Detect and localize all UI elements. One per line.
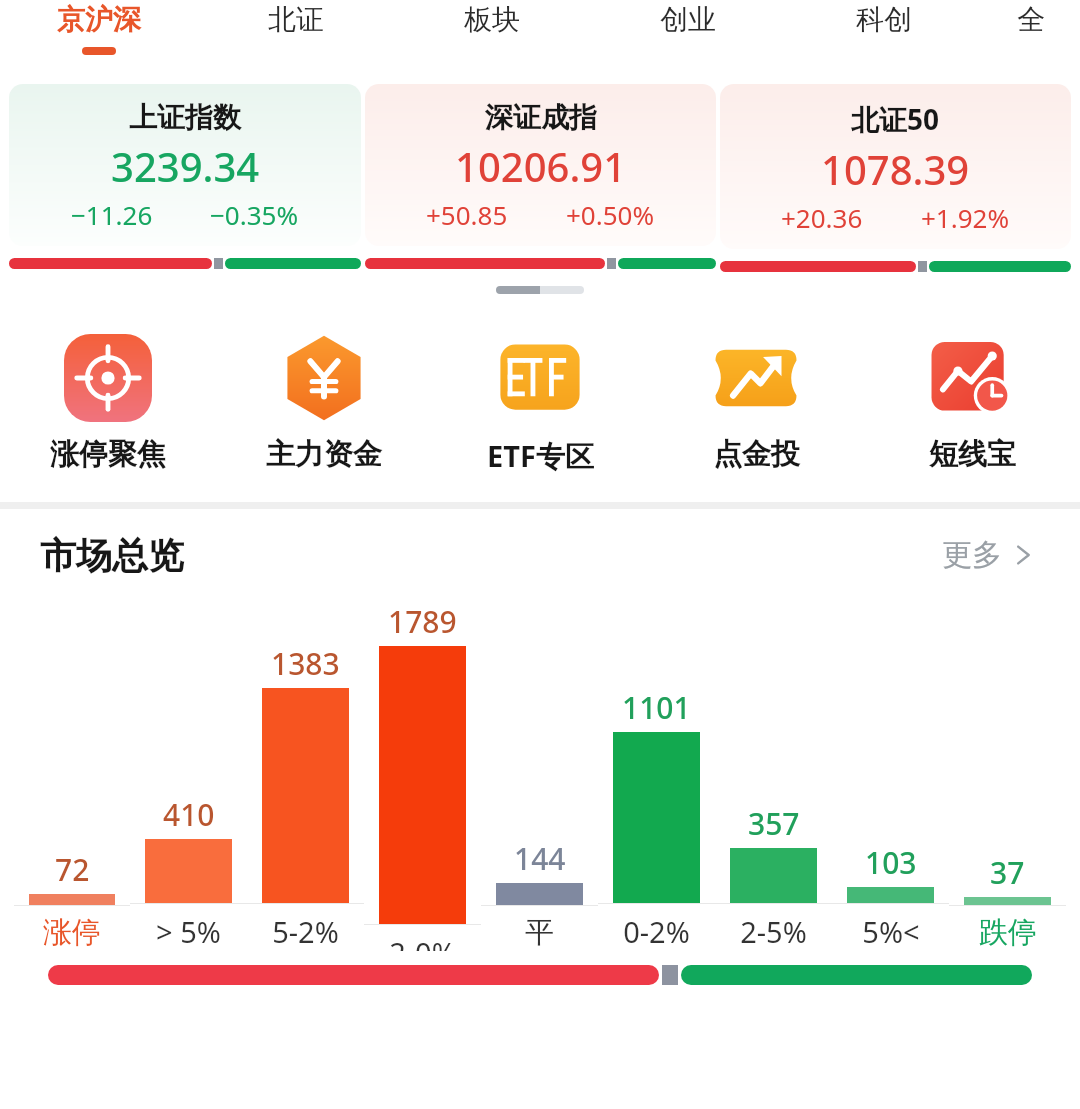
staticText: 5%< xyxy=(862,912,920,951)
staticText: 跌停 xyxy=(979,914,1037,951)
staticText: 市场总览 xyxy=(40,533,184,578)
staticText: 410 xyxy=(163,794,215,835)
staticText: 103 xyxy=(865,842,917,883)
button[interactable]: 北证50 xyxy=(720,84,1071,249)
staticText: 平 xyxy=(525,914,554,951)
button[interactable]: 全 xyxy=(982,0,1080,84)
staticText: 357 xyxy=(748,803,800,844)
staticText: 北证 xyxy=(268,2,324,37)
staticText: +0.50% xyxy=(566,197,655,232)
button[interactable]: 主力资金 xyxy=(216,334,432,473)
other: 主力资金 xyxy=(280,334,368,422)
staticText: 1789 xyxy=(388,601,457,642)
staticText: 2-0% xyxy=(389,933,456,951)
staticText: −11.26 xyxy=(71,197,153,232)
staticText: 主力资金 xyxy=(266,436,382,473)
staticText: 144 xyxy=(514,838,566,879)
button[interactable]: 板块 xyxy=(394,0,590,84)
staticText: 2-5% xyxy=(740,912,807,951)
staticText: 0-2% xyxy=(623,912,690,951)
staticText: 72 xyxy=(55,849,90,890)
staticText: +20.36 xyxy=(781,200,863,235)
staticText: 上证指数 xyxy=(129,100,241,135)
staticText: +50.85 xyxy=(426,197,508,232)
staticText: > 5% xyxy=(156,912,221,951)
staticText: 5-2% xyxy=(272,912,339,951)
button[interactable]: 短线宝 xyxy=(864,334,1080,473)
other: 点金投 xyxy=(712,334,800,422)
button[interactable]: 涨停聚焦 xyxy=(0,334,216,473)
staticText: 科创 xyxy=(856,2,912,37)
staticText: 全 xyxy=(1017,2,1045,37)
staticText: 创业 xyxy=(660,2,716,37)
button[interactable]: 更多 xyxy=(936,530,1040,580)
staticText: −0.35% xyxy=(210,197,299,232)
button[interactable]: 点金投 xyxy=(648,334,864,473)
staticText: 37 xyxy=(990,852,1025,893)
staticText: 北证50 xyxy=(851,100,940,138)
staticText: 更多 xyxy=(942,536,1002,574)
staticText: 涨停聚焦 xyxy=(50,436,166,473)
button[interactable]: 创业 xyxy=(590,0,786,84)
button[interactable]: 深证成指 xyxy=(365,84,716,246)
staticText: 1101 xyxy=(622,687,691,728)
staticText: 10206.91 xyxy=(455,139,627,193)
staticText: ETF专区 xyxy=(487,436,594,476)
button[interactable]: 京沪深 xyxy=(0,0,197,84)
button[interactable]: 上证指数 xyxy=(9,84,361,246)
other: ETF专区 xyxy=(496,334,584,422)
button[interactable]: 北证 xyxy=(197,0,394,84)
other: 短线宝 xyxy=(928,334,1016,422)
staticText: 板块 xyxy=(464,2,520,37)
staticText: 涨停 xyxy=(43,914,101,951)
staticText: 京沪深 xyxy=(57,2,141,37)
staticText: 点金投 xyxy=(713,436,800,473)
staticText: 3239.34 xyxy=(111,139,260,193)
staticText: 1383 xyxy=(271,643,340,684)
staticText: 1078.39 xyxy=(821,142,970,196)
button[interactable]: ETF专区 xyxy=(432,334,648,476)
button[interactable]: 科创 xyxy=(786,0,982,84)
staticText: +1.92% xyxy=(921,200,1010,235)
staticText: 短线宝 xyxy=(929,436,1016,473)
staticText: 深证成指 xyxy=(485,100,597,135)
other: 涨停聚焦 xyxy=(64,334,152,422)
